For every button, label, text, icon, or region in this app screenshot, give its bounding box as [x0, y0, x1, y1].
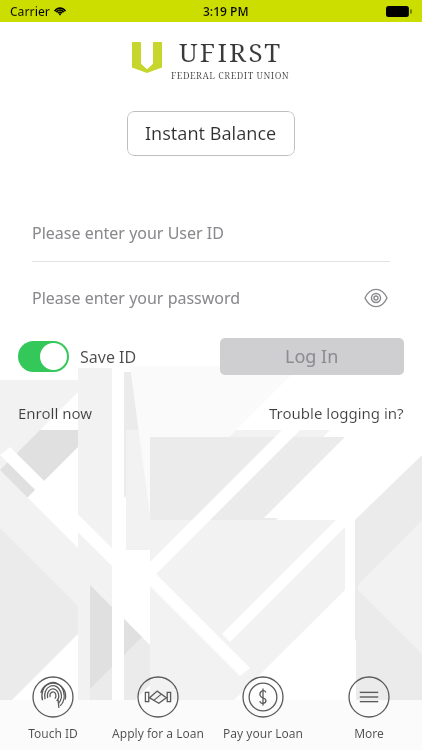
- staticText: Instant Balance: [145, 121, 277, 146]
- staticText: Please enter your password: [32, 287, 241, 309]
- staticText: Save ID: [80, 346, 137, 368]
- button[interactable]: Touch ID: [0, 662, 105, 750]
- staticText: Enroll now: [18, 403, 93, 423]
- staticText: Apply for a Loan: [112, 725, 204, 741]
- staticText: Carrier: [10, 3, 50, 19]
- staticText: Trouble logging in?: [269, 403, 404, 423]
- button[interactable]: Instant Balance: [127, 111, 295, 156]
- button[interactable]: More: [316, 662, 422, 750]
- button[interactable]: Enroll now: [18, 403, 93, 423]
- button[interactable]: Apply for a Loan: [105, 662, 210, 750]
- staticText: Touch ID: [28, 725, 78, 741]
- button[interactable]: Log In: [220, 338, 404, 375]
- staticText: Please enter your User ID: [32, 222, 224, 244]
- staticText: More: [354, 725, 384, 741]
- staticText: 3:19 PM: [203, 3, 249, 19]
- button[interactable]: Pay your Loan: [210, 662, 316, 750]
- button[interactable]: Please enter your User ID: [0, 222, 422, 262]
- button[interactable]: Trouble logging in?: [269, 403, 404, 423]
- staticText: Log In: [285, 344, 339, 369]
- staticText: FEDERAL CREDIT UNION: [171, 69, 290, 81]
- button[interactable]: Please enter your password: [0, 284, 422, 312]
- staticText: Pay your Loan: [223, 725, 303, 741]
- button[interactable]: Show password: [362, 284, 390, 312]
- button[interactable]: Save ID: [18, 341, 137, 372]
- staticText: UFIRST: [179, 34, 283, 69]
